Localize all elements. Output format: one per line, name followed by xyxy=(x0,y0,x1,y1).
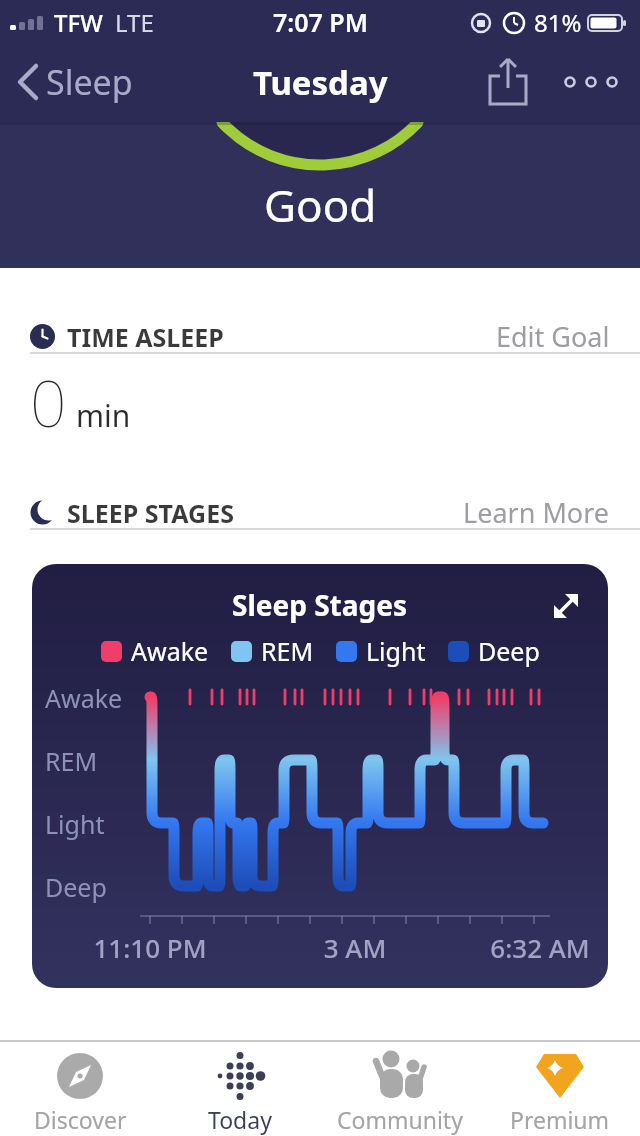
staticText: Today xyxy=(208,1104,272,1135)
button[interactable]: Edit Goal xyxy=(496,318,610,355)
button[interactable]: Learn More xyxy=(463,494,610,531)
button[interactable]: Today xyxy=(160,1042,320,1136)
staticText: 6:32 AM xyxy=(465,930,608,965)
staticText: Light xyxy=(45,807,105,841)
staticText: 0 xyxy=(30,359,67,446)
staticText: Community xyxy=(337,1104,463,1135)
staticText: Awake xyxy=(45,681,123,715)
staticText: Deep xyxy=(45,870,107,904)
staticText: Sleep Stages xyxy=(232,586,408,624)
button[interactable]: Community xyxy=(320,1042,480,1136)
button[interactable] xyxy=(480,52,536,112)
staticText: 81% xyxy=(534,6,582,39)
button[interactable]: Premium xyxy=(480,1042,640,1136)
staticText: SLEEP STAGES xyxy=(67,496,234,530)
button[interactable]: Discover xyxy=(0,1042,160,1136)
staticText: 7:07 PM xyxy=(273,5,368,39)
staticText: min xyxy=(76,395,131,436)
staticText: Tuesday xyxy=(253,60,388,105)
staticText: REM xyxy=(45,744,98,778)
staticText: REM xyxy=(261,634,314,668)
staticText: Deep xyxy=(478,634,540,668)
staticText: Premium xyxy=(510,1104,610,1135)
staticText: TFW xyxy=(54,6,103,39)
staticText: Sleep xyxy=(46,59,133,105)
staticText: 11:10 PM xyxy=(75,930,225,965)
staticText: Awake xyxy=(131,634,209,668)
staticText: 3 AM xyxy=(280,930,430,965)
button[interactable] xyxy=(562,62,630,102)
button[interactable]: Sleep Stages xyxy=(32,564,608,988)
staticText: TIME ASLEEP xyxy=(67,320,224,354)
staticText: Discover xyxy=(34,1104,127,1135)
staticText: Light xyxy=(366,634,426,668)
staticText: LTE xyxy=(115,6,154,39)
button[interactable]: Sleep xyxy=(14,59,133,105)
staticText: Good xyxy=(264,175,377,235)
